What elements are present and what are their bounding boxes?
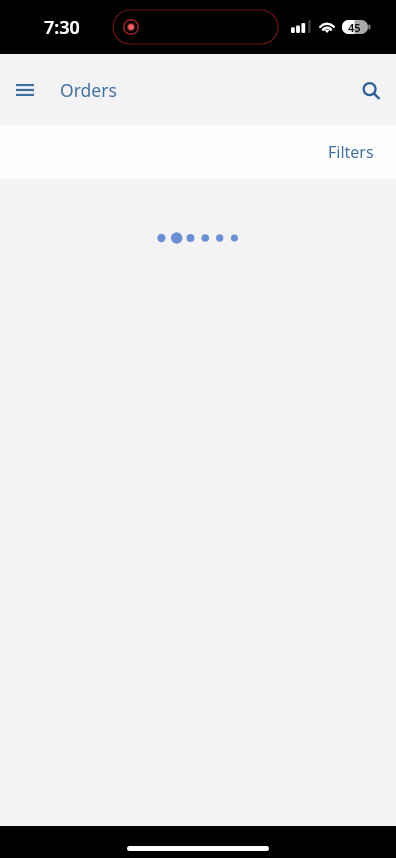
button[interactable]: Menu (1, 66, 49, 114)
button[interactable]: Search (348, 66, 396, 114)
button[interactable]: Filters (306, 125, 396, 179)
staticText: Orders (60, 78, 117, 102)
staticText: 7:30 (44, 15, 80, 40)
staticText: Filters (328, 141, 374, 163)
staticText: 45 (348, 20, 361, 34)
